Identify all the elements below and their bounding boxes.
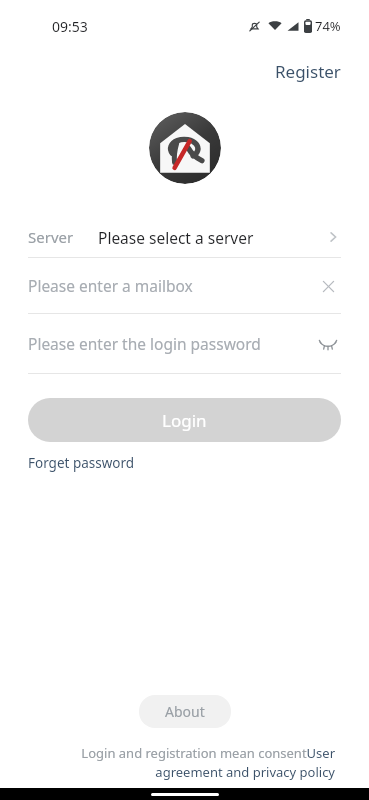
- button[interactable]: Show password: [315, 331, 341, 357]
- staticText: 74%: [315, 17, 341, 35]
- staticText: Server: [28, 227, 74, 247]
- staticText: Login: [162, 409, 207, 432]
- button[interactable]: Login and registration mean consentUser …: [34, 744, 335, 788]
- staticText: About: [165, 702, 205, 721]
- button[interactable]: About: [139, 695, 231, 728]
- other: Select server: [325, 229, 341, 245]
- button[interactable]: Login: [28, 398, 341, 442]
- staticText: Please enter the login password: [28, 333, 261, 354]
- button[interactable]: Please enter the login password: [28, 314, 341, 373]
- staticText: Please enter a mailbox: [28, 275, 193, 296]
- button[interactable]: Clear: [315, 273, 341, 299]
- staticText: Login and registration mean consentUser …: [34, 744, 335, 781]
- staticText: Forget password: [28, 454, 135, 472]
- button[interactable]: Forget password: [28, 454, 135, 472]
- button[interactable]: Server: [28, 217, 341, 257]
- staticText: 09:53: [52, 17, 88, 36]
- staticText: Please select a server: [98, 227, 254, 248]
- button[interactable]: Please enter a mailbox: [28, 258, 341, 313]
- staticText: Register: [275, 60, 341, 83]
- button[interactable]: Register: [247, 52, 369, 91]
